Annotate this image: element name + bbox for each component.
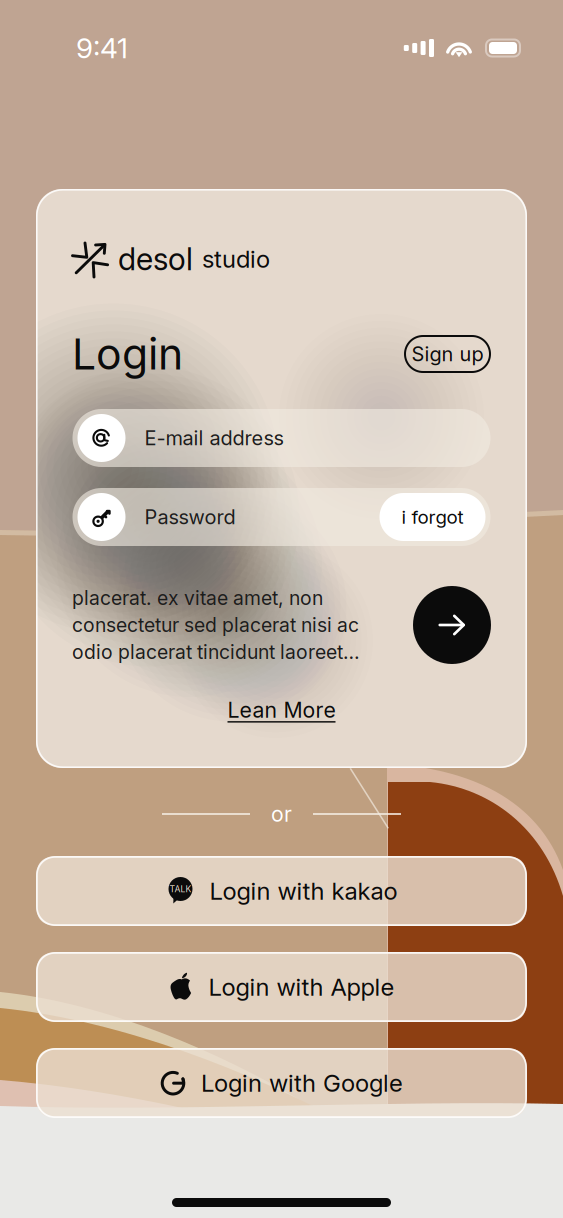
- staticText: TALK: [169, 884, 191, 894]
- staticText: or: [271, 801, 292, 827]
- button[interactable]: Login with Google: [36, 1048, 527, 1118]
- staticText: Login: [72, 328, 183, 380]
- staticText: Sign up: [411, 342, 483, 366]
- button[interactable]: Lean More: [227, 697, 335, 723]
- button[interactable]: i forgot: [379, 493, 485, 541]
- staticText: placerat. ex vitae amet, non: [72, 586, 323, 610]
- button[interactable]: TALK: [36, 856, 527, 926]
- staticText: Login with Google: [201, 1068, 403, 1097]
- staticText: 9:41: [76, 31, 128, 65]
- staticText: desol: [118, 240, 193, 277]
- staticText: consectetur sed placerat nisi ac: [72, 613, 359, 637]
- staticText: i forgot: [401, 506, 463, 528]
- staticText: Login with Apple: [208, 972, 394, 1001]
- button[interactable]: Continue: [413, 586, 491, 664]
- staticText: studio: [202, 244, 270, 273]
- staticText: Login with kakao: [209, 876, 397, 905]
- staticText: E-mail address: [144, 426, 283, 450]
- button[interactable]: Login with Apple: [36, 952, 527, 1022]
- staticText: Password: [144, 505, 235, 529]
- staticText: odio placerat tincidunt laoreet…: [72, 640, 360, 664]
- staticText: Lean More: [227, 697, 335, 723]
- button[interactable]: Sign up: [404, 335, 491, 373]
